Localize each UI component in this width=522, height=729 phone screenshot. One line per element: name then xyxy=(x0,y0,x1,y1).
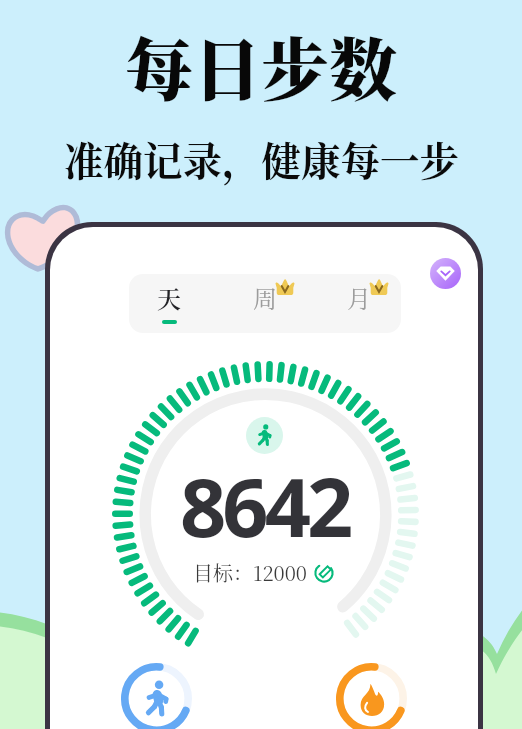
button[interactable]: 天 xyxy=(129,274,219,333)
button[interactable]: 周 xyxy=(219,274,310,333)
button[interactable]: Stat xyxy=(336,663,407,729)
staticText: 每日步数 xyxy=(125,17,398,115)
staticText: 目标：12000 xyxy=(193,558,307,587)
staticText: 8642 xyxy=(180,450,350,560)
button[interactable]: Stat xyxy=(121,663,192,729)
staticText: 准确记录，健康每一步 xyxy=(64,131,459,188)
button[interactable]: VIP xyxy=(430,258,461,289)
staticText: 天 xyxy=(157,280,181,314)
staticText: 月 xyxy=(347,280,371,314)
staticText: 周 xyxy=(253,280,277,314)
button[interactable]: 月 xyxy=(310,274,401,333)
